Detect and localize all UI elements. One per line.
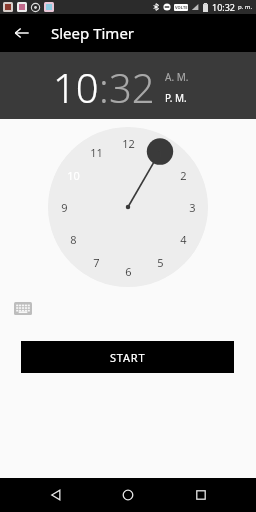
staticText: 2 xyxy=(180,168,187,183)
staticText: 11 xyxy=(90,145,103,160)
button[interactable]: Home xyxy=(111,478,145,512)
staticText: Sleep Timer xyxy=(51,23,135,43)
button[interactable]: START xyxy=(21,341,234,373)
button[interactable]: 10 xyxy=(53,60,99,114)
staticText: 10:32 xyxy=(212,1,236,13)
button[interactable]: Recent apps xyxy=(184,478,218,512)
staticText: p. m. xyxy=(238,3,253,11)
staticText: 3 xyxy=(189,200,196,215)
button[interactable]: P. M. xyxy=(165,91,187,105)
button[interactable]: Clock face xyxy=(48,127,208,287)
staticText: 5 xyxy=(157,255,164,270)
button[interactable]: A. M. xyxy=(165,70,189,84)
staticText: 10 xyxy=(67,168,80,183)
staticText: 9 xyxy=(61,200,68,215)
staticText: START xyxy=(110,350,146,365)
button[interactable]: Back xyxy=(8,19,36,47)
staticText: VOLTE xyxy=(175,5,188,10)
button[interactable]: 32 xyxy=(109,60,155,114)
staticText: 7 xyxy=(93,255,100,270)
staticText: 6 xyxy=(125,264,132,279)
button[interactable]: Switch to keyboard input xyxy=(12,297,34,319)
staticText: 12 xyxy=(122,136,135,151)
button[interactable]: Back xyxy=(39,478,73,512)
staticText: 8 xyxy=(70,232,77,247)
staticText: : xyxy=(99,60,109,114)
staticText: 4 xyxy=(180,232,187,247)
